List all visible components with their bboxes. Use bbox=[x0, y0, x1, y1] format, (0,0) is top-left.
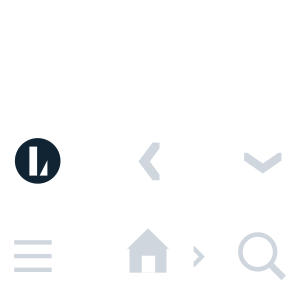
button[interactable]: Back bbox=[138, 143, 159, 180]
button[interactable]: Expand bbox=[244, 153, 281, 173]
button[interactable]: Search bbox=[230, 224, 286, 280]
button[interactable]: Show more bbox=[194, 246, 205, 267]
button[interactable]: Brand home bbox=[15, 138, 61, 184]
button[interactable]: Home bbox=[127, 228, 169, 273]
button[interactable]: Menu bbox=[14, 240, 52, 272]
